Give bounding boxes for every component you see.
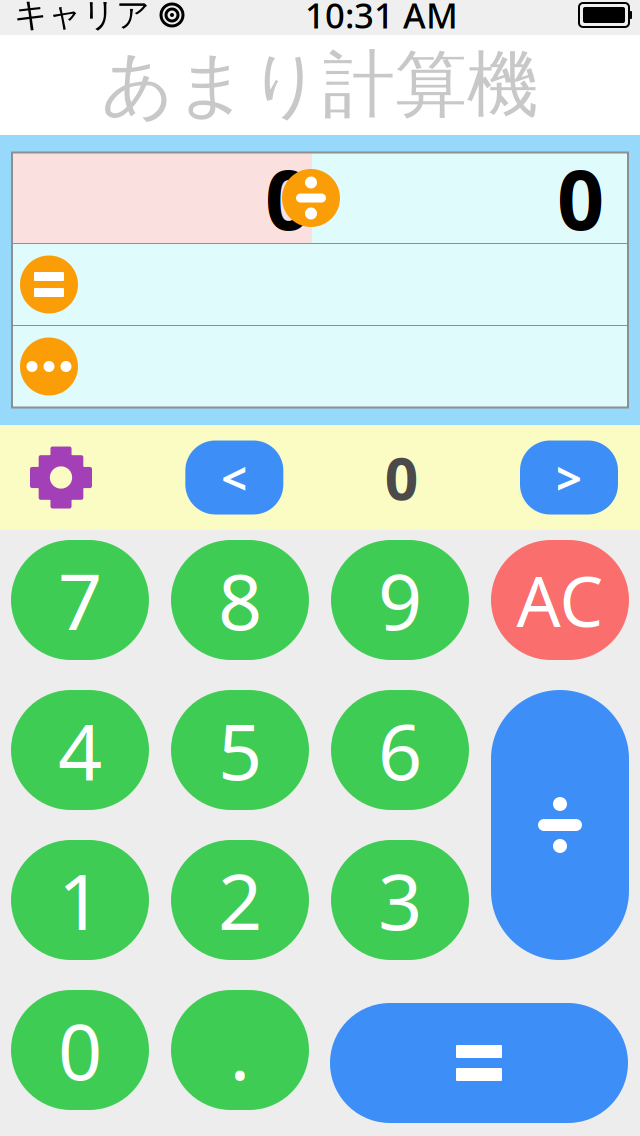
button[interactable]: 6 (331, 690, 469, 810)
staticText: あまり計算機 (101, 41, 539, 129)
staticText: > (556, 447, 582, 508)
button[interactable]: > (520, 440, 618, 514)
staticText: 3 (378, 849, 422, 951)
button[interactable]: Equals (330, 1003, 628, 1123)
button[interactable]: Remainder (12, 325, 86, 407)
staticText: 8 (218, 549, 262, 651)
staticText: 7 (58, 549, 102, 651)
button[interactable]: AC (491, 540, 629, 660)
button[interactable]: 5 (171, 690, 309, 810)
staticText: 0 (58, 999, 102, 1101)
button[interactable]: 0 (11, 990, 149, 1110)
staticText: キャリア (14, 0, 150, 35)
button[interactable]: 3 (331, 840, 469, 960)
button[interactable]: < (185, 440, 283, 514)
staticText: 0 (557, 143, 604, 253)
staticText: 1 (58, 849, 102, 951)
staticText: < (221, 447, 247, 508)
button[interactable]: 8 (171, 540, 309, 660)
staticText: 2 (218, 849, 262, 951)
button[interactable]: 9 (331, 540, 469, 660)
button[interactable]: Quotient (12, 243, 86, 325)
staticText: 5 (218, 699, 262, 801)
button[interactable]: 7 (11, 540, 149, 660)
button[interactable]: 2 (171, 840, 309, 960)
staticText: 0 (385, 438, 419, 516)
staticText: 0 (265, 143, 312, 253)
button[interactable]: . (171, 990, 309, 1110)
button[interactable]: Divide (282, 169, 340, 227)
staticText: 6 (378, 699, 422, 801)
button[interactable]: Equals (331, 990, 469, 1110)
staticText: AC (516, 554, 603, 646)
button[interactable]: Settings (25, 441, 97, 513)
staticText: 9 (378, 549, 422, 651)
staticText: . (229, 999, 250, 1101)
button[interactable]: Divide (491, 690, 629, 960)
staticText: 4 (58, 699, 102, 801)
staticText: 10:31 AM (305, 0, 458, 38)
button[interactable]: 4 (11, 690, 149, 810)
button[interactable]: 1 (11, 840, 149, 960)
